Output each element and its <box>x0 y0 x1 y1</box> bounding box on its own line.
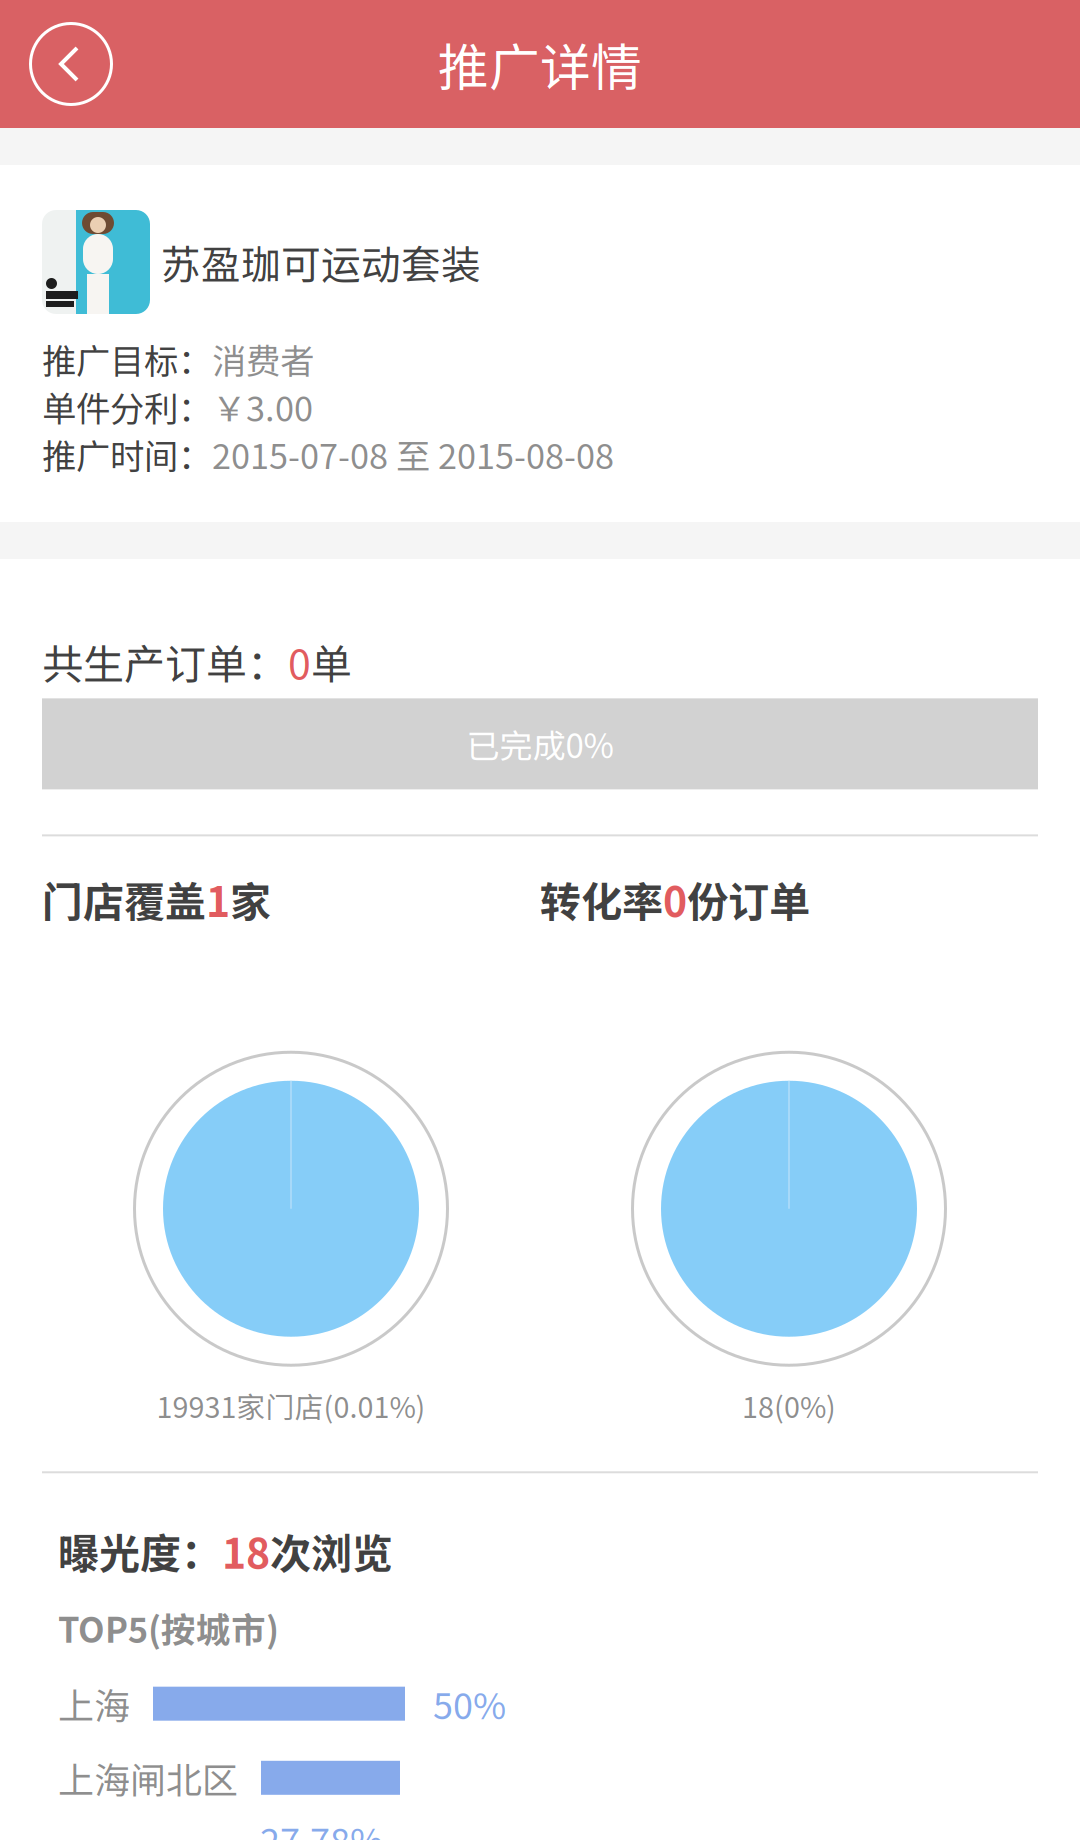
staticText: 曝光度： <box>58 1521 222 1581</box>
staticText: 19931家门店(0.01%) <box>156 1385 425 1426</box>
staticText: 推广时间： <box>42 429 212 479</box>
staticText: 1 <box>206 869 230 929</box>
staticText: 上海 <box>58 1678 130 1730</box>
staticText: 18 <box>222 1521 270 1581</box>
staticText: 2015-07-08 至 2015-08-08 <box>212 429 614 479</box>
staticText: 推广目标： <box>42 334 212 384</box>
staticText: 0 <box>288 632 311 691</box>
staticText: 上海闸北区 <box>58 1752 238 1804</box>
staticText: 苏盈珈可运动套装 <box>161 233 481 291</box>
staticText: 50% <box>433 1678 506 1730</box>
staticText: 单 <box>311 632 352 691</box>
staticText: 份订单 <box>687 869 810 929</box>
staticText: TOP5(按城市) <box>58 1603 279 1653</box>
button[interactable]: Back <box>21 14 121 114</box>
staticText: 次浏览 <box>270 1521 393 1581</box>
staticText: 18(0%) <box>742 1385 836 1426</box>
staticText: 门店覆盖 <box>42 869 206 929</box>
staticText: 27.78% <box>260 1813 383 1840</box>
staticText: 转化率 <box>540 869 663 929</box>
staticText: 家 <box>230 869 271 929</box>
staticText: 已完成0% <box>466 720 613 768</box>
staticText: 消费者 <box>212 334 314 384</box>
staticText: 共生产订单： <box>42 632 288 691</box>
staticText: 推广详情 <box>438 27 642 101</box>
staticText: 0 <box>663 869 687 929</box>
staticText: 单件分利： <box>42 382 212 431</box>
staticText: ￥3.00 <box>212 382 313 431</box>
